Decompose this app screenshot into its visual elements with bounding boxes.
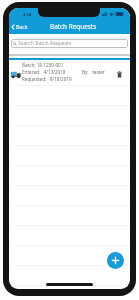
staticText: 4:34 [23,12,32,18]
staticText: Back [16,23,28,30]
staticText: Requested: 9/18/2019 [22,76,72,82]
staticText: Batch: 18-1250-001 [22,62,64,68]
button[interactable]: Back [9,22,30,31]
button[interactable]: Delete [113,68,125,80]
staticText: By: tester [82,69,105,75]
button[interactable]: Add new batch request [107,252,124,269]
staticText: Batch Requests [50,22,97,31]
button[interactable]: Search Batch Requests [11,39,128,48]
staticText: Search Batch Requests [18,40,72,47]
button[interactable]: Batch: 18-1250-001 [9,60,130,85]
staticText: Entered: 4/13/2018 [22,69,66,75]
